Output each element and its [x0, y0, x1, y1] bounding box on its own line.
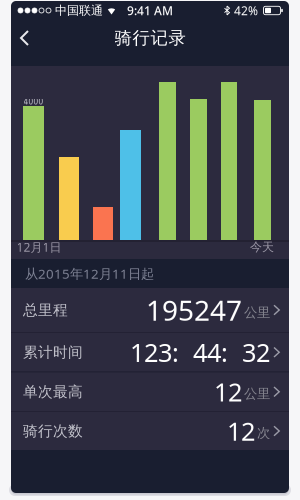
button[interactable]: Back [11, 19, 42, 57]
staticText: 总里程 [23, 301, 68, 319]
staticText: 12月1日 [16, 239, 61, 255]
button[interactable]: 骑行次数 [11, 412, 289, 450]
staticText: 骑行记录 [114, 27, 185, 49]
staticText: 9:41 AM [127, 2, 173, 18]
staticText: 从2015年12月11日起 [25, 265, 154, 282]
staticText: 骑行次数 [23, 422, 83, 440]
staticText: 次 [257, 425, 270, 441]
staticText: 12 [214, 375, 242, 408]
button[interactable]: 单次最高 [11, 372, 289, 411]
staticText: 累计时间 [23, 343, 83, 361]
staticText: 今天 [250, 240, 274, 254]
staticText: 公里 [244, 386, 270, 402]
staticText: 4000 [23, 96, 43, 107]
staticText: 中国联通 [55, 3, 103, 18]
staticText: 123: 44: 32 [130, 335, 270, 369]
button[interactable]: 总里程 [11, 288, 289, 332]
staticText: 公里 [244, 304, 270, 321]
staticText: 195247 [146, 291, 242, 329]
staticText: 42% [234, 2, 258, 18]
staticText: 12 [227, 414, 255, 448]
button[interactable]: 累计时间 [11, 333, 289, 371]
staticText: 单次最高 [23, 383, 83, 401]
